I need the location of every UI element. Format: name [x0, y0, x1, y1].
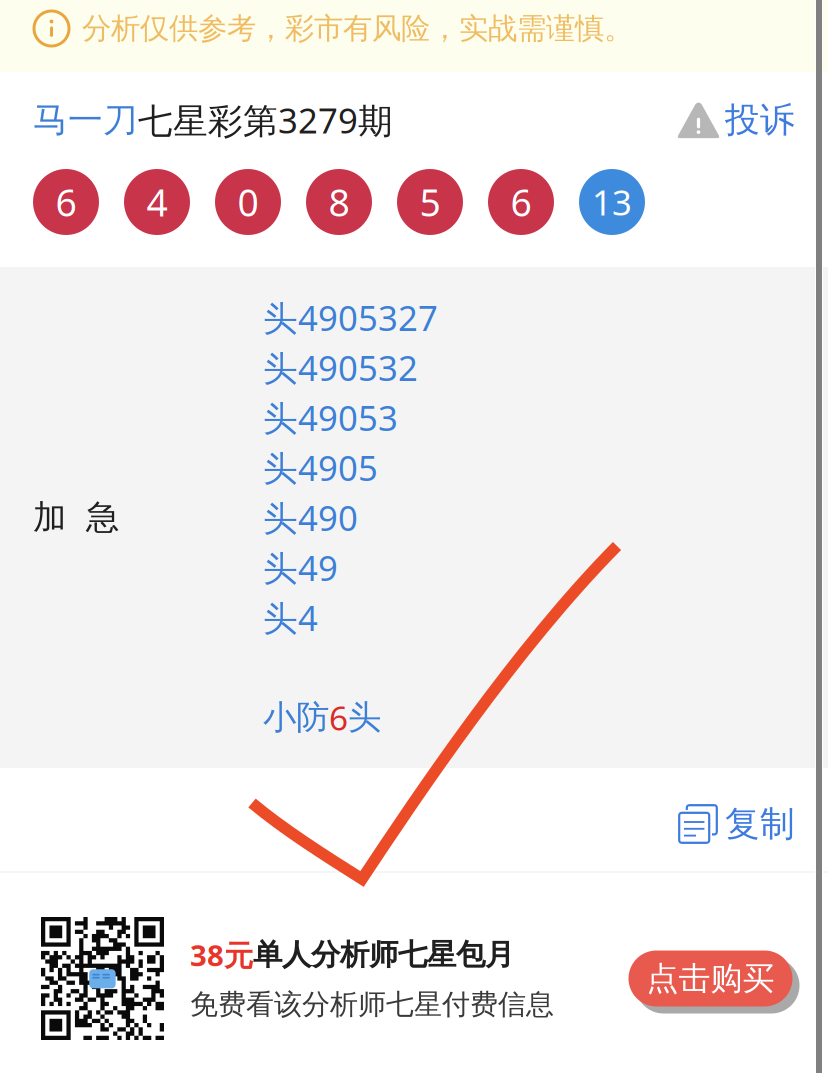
staticText: 头490532: [263, 344, 418, 390]
staticText: 8: [328, 177, 349, 227]
staticText: 5: [419, 177, 440, 227]
button[interactable]: 投诉: [677, 99, 795, 141]
staticText: 头4: [263, 594, 318, 640]
staticText: 单人分析师七星包月: [253, 937, 514, 973]
staticText: 0: [237, 177, 258, 227]
staticText: 投诉: [725, 99, 795, 141]
staticText: 马一刀: [33, 99, 138, 141]
staticText: 小防: [263, 697, 329, 738]
staticText: 加 急: [33, 497, 119, 538]
staticText: 13: [592, 179, 632, 225]
staticText: 6: [55, 177, 76, 227]
staticText: 复制: [725, 803, 795, 845]
button[interactable]: 点击购买: [625, 947, 796, 1010]
staticText: 38元: [190, 935, 253, 974]
staticText: 头49: [263, 544, 338, 590]
staticText: 七星彩第3279期: [138, 97, 393, 143]
staticText: 头4905327: [263, 294, 438, 340]
staticText: 6: [510, 177, 531, 227]
staticText: 头49053: [263, 394, 398, 440]
staticText: 免费看该分析师七星付费信息: [190, 987, 554, 1022]
staticText: 4: [146, 177, 167, 227]
staticText: 头4905: [263, 444, 378, 490]
button[interactable]: 复制: [678, 794, 795, 845]
staticText: 分析仅供参考，彩市有风险，实战需谨慎。: [82, 10, 633, 46]
staticText: 6: [329, 695, 348, 740]
staticText: 头490: [263, 494, 358, 540]
staticText: 点击购买: [646, 959, 774, 998]
staticText: 头: [348, 697, 381, 738]
